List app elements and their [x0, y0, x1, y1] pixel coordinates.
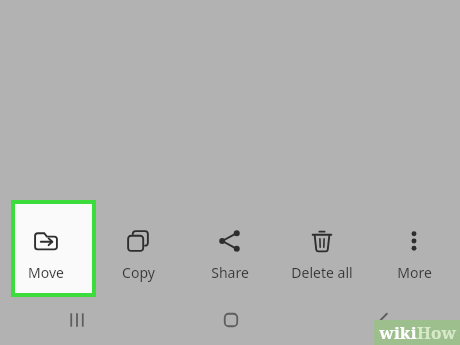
staticText: How [417, 321, 456, 344]
staticText: Copy [122, 263, 155, 282]
button[interactable]: Recents [0, 300, 154, 345]
button[interactable]: Share [184, 222, 276, 282]
button[interactable]: Back [307, 300, 460, 345]
button[interactable]: More [368, 222, 460, 282]
staticText: More [397, 263, 432, 282]
staticText: Delete all [291, 263, 353, 282]
staticText: wiki [379, 321, 417, 344]
staticText: Share [211, 263, 249, 282]
staticText: Move [28, 263, 64, 282]
button[interactable]: Copy [92, 222, 184, 282]
button[interactable]: Move [0, 222, 92, 282]
button[interactable]: Home [154, 300, 307, 345]
button[interactable]: Delete all [276, 222, 368, 282]
